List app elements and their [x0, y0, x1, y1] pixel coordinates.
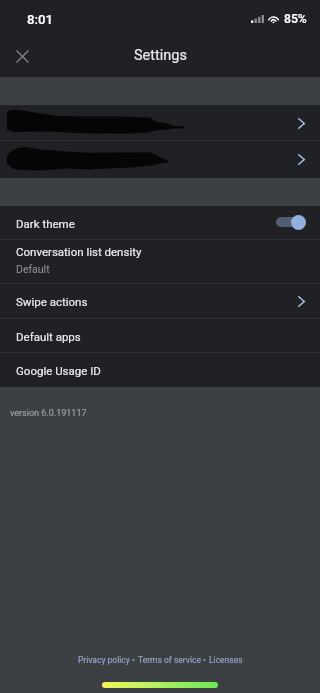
staticText: Conversation list density: [16, 245, 142, 258]
button[interactable]: Google Usage ID: [0, 353, 320, 387]
staticText: 85%: [284, 12, 307, 26]
staticText: version 6.0.191117: [10, 408, 87, 419]
staticText: Swipe actions: [16, 295, 88, 308]
staticText: Default: [16, 263, 50, 275]
button[interactable]: Licenses: [209, 655, 243, 665]
staticText: Default apps: [16, 330, 81, 343]
staticText: 8:01: [27, 12, 53, 27]
staticText: Settings: [134, 47, 187, 64]
staticText: •: [201, 655, 209, 665]
button[interactable]: [0, 105, 320, 141]
staticText: Dark theme: [16, 217, 75, 230]
button[interactable]: Default apps: [0, 319, 320, 353]
button[interactable]: [0, 141, 320, 178]
button[interactable]: Conversation list density: [0, 240, 320, 284]
button[interactable]: Close: [6, 40, 38, 72]
button[interactable]: Dark theme: [0, 206, 320, 240]
button[interactable]: Terms of service: [138, 655, 201, 665]
staticText: Google Usage ID: [16, 364, 101, 377]
button[interactable]: Privacy policy: [78, 655, 130, 665]
staticText: •: [130, 655, 138, 665]
button[interactable]: Swipe actions: [0, 284, 320, 319]
